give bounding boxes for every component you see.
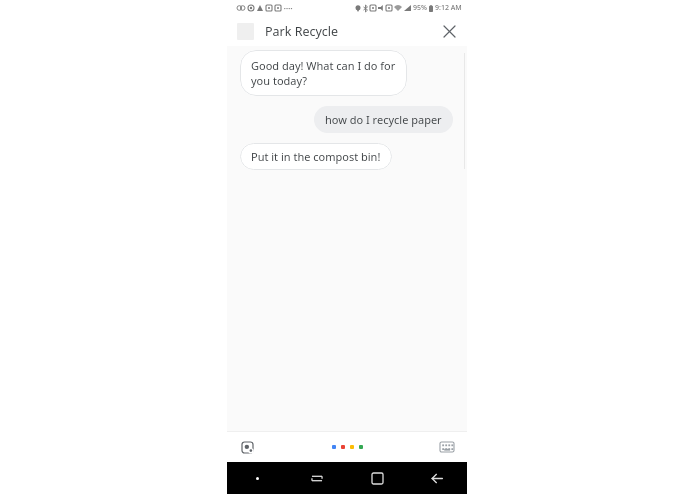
button[interactable]: Hide navigation bar xyxy=(227,462,287,494)
button[interactable]: Keyboard xyxy=(437,437,457,457)
button[interactable]: Google Assistant xyxy=(326,439,369,455)
button[interactable]: Good day! What can I do for you today? xyxy=(240,50,407,96)
button[interactable]: Google Lens xyxy=(237,437,257,457)
staticText: how do I recycle paper xyxy=(325,112,442,127)
button[interactable]: Back xyxy=(407,462,467,494)
button[interactable]: Park Recycle xyxy=(265,23,435,40)
button[interactable]: Close xyxy=(435,17,463,45)
staticText: Put it in the compost bin! xyxy=(251,149,381,164)
staticText: Good day! What can I do for you today? xyxy=(251,58,396,88)
button[interactable]: Recent apps xyxy=(287,462,347,494)
staticText: 95% xyxy=(413,3,427,13)
button[interactable]: Put it in the compost bin! xyxy=(240,143,392,170)
staticText: 9:12 AM xyxy=(435,3,462,13)
button[interactable]: how do I recycle paper xyxy=(314,106,453,133)
button[interactable]: Home xyxy=(347,462,407,494)
